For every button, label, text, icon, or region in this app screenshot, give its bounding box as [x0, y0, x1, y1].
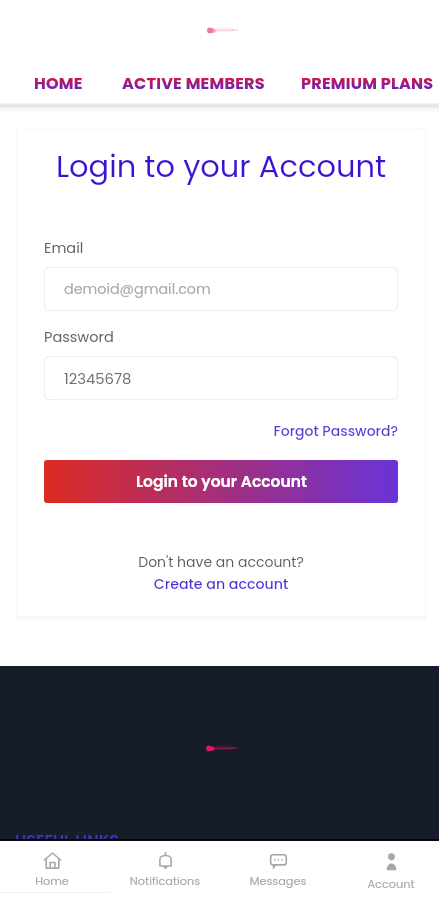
staticText: 12345678 [64, 368, 132, 389]
other: Account [383, 853, 400, 870]
other: Notifications [157, 852, 174, 869]
staticText: Email [44, 238, 84, 258]
other: Messages [270, 853, 287, 870]
staticText: Account [351, 876, 431, 892]
button[interactable]: Create an account [44, 574, 398, 594]
button[interactable]: Messages [238, 841, 318, 900]
button[interactable]: Notifications [125, 841, 205, 900]
other: Home [44, 852, 61, 869]
button[interactable]: Login to your Account [44, 460, 398, 503]
staticText: demoid@gmail.com [64, 279, 211, 299]
staticText: Login to your Account [136, 471, 307, 493]
staticText: Password [44, 327, 114, 347]
button[interactable]: Account [351, 841, 431, 900]
button[interactable]: ACTIVE MEMBERS [122, 72, 265, 94]
staticText: HOME [34, 72, 83, 94]
staticText: ACTIVE MEMBERS [122, 72, 265, 94]
button[interactable]: 12345678 [44, 356, 398, 400]
button[interactable]: Forgot Password? [44, 421, 398, 441]
staticText: PREMIUM PLANS [301, 72, 434, 94]
button[interactable]: demoid@gmail.com [44, 267, 398, 311]
staticText: Messages [238, 873, 318, 889]
staticText: Notifications [125, 873, 205, 889]
staticText: USEFUL LINKS [15, 829, 120, 851]
staticText: Don't have an account? [44, 552, 398, 572]
button[interactable]: PREMIUM PLANS [301, 72, 434, 94]
staticText: Home [12, 873, 92, 889]
button[interactable]: Home [12, 841, 92, 900]
staticText: Login to your Account [16, 145, 426, 188]
button[interactable]: HOME [34, 72, 83, 94]
